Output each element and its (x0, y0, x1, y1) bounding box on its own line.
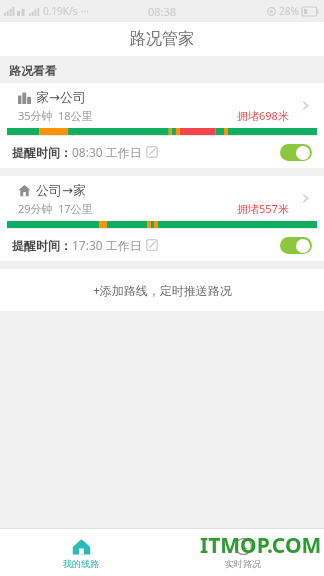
other: 编辑 (146, 239, 158, 251)
button[interactable]: 提醒时间： (0, 136, 324, 168)
other: 详情 (299, 192, 312, 205)
staticText: 35分钟 (18, 108, 53, 123)
staticText: 路况管家 (130, 29, 194, 49)
button[interactable]: 提醒开关 (280, 144, 312, 161)
button[interactable]: 公司→家 (0, 176, 324, 221)
staticText: 29分钟 (18, 201, 53, 216)
button[interactable]: 提醒时间： (0, 229, 324, 261)
staticText: 拥堵557米 (237, 201, 289, 216)
staticText: 拥堵698米 (237, 108, 289, 123)
staticText: 17公里 (58, 201, 93, 216)
staticText: 17:30 工作日 (72, 237, 142, 253)
staticText: 提醒时间： (12, 238, 72, 253)
button[interactable]: 家→公司 (0, 83, 324, 128)
button[interactable]: +添加路线，定时推送路况 (0, 269, 324, 311)
button[interactable]: 提醒开关 (280, 237, 312, 254)
staticText: 实时路况 (225, 558, 261, 569)
staticText: ITMOP.COM (200, 531, 322, 560)
button[interactable]: 实时路况 (162, 529, 324, 576)
button[interactable]: 我的线路 (0, 529, 162, 576)
staticText: 提醒时间： (12, 145, 72, 160)
staticText: 0.19K/s (43, 4, 78, 18)
staticText: 18公里 (58, 108, 93, 123)
staticText: 08:30 工作日 (72, 144, 142, 160)
staticText: ··· (81, 4, 90, 18)
staticText: 我的线路 (63, 558, 99, 569)
staticText: +添加路线，定时推送路况 (93, 282, 232, 298)
staticText: 28% (279, 4, 299, 18)
staticText: 家→公司 (36, 89, 86, 105)
other: 编辑 (146, 146, 158, 158)
staticText: 路况看看 (9, 63, 57, 78)
staticText: 公司→家 (36, 182, 86, 198)
staticText: 08:38 (148, 4, 177, 19)
other: 详情 (299, 99, 312, 112)
